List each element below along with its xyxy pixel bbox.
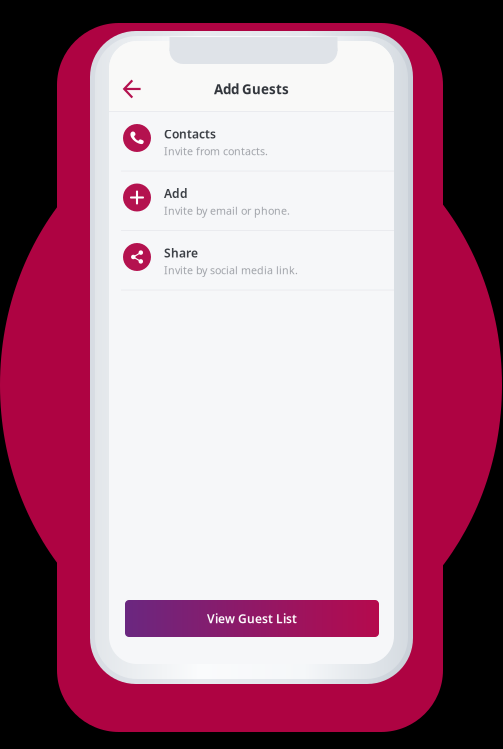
staticText: Share <box>164 245 198 261</box>
button[interactable]: View Guest List <box>109 600 394 637</box>
button[interactable]: Add <box>109 171 394 231</box>
staticText: Invite from contacts. <box>164 144 268 158</box>
staticText: Add <box>164 185 188 201</box>
staticText: Invite by social media link. <box>164 263 298 277</box>
staticText: View Guest List <box>207 610 297 626</box>
staticText: Invite by email or phone. <box>164 203 290 218</box>
button[interactable]: Contacts <box>109 112 394 171</box>
staticText: Contacts <box>164 126 216 142</box>
staticText: Add Guests <box>214 80 289 98</box>
button[interactable]: Share <box>109 231 394 290</box>
button[interactable]: Back <box>109 68 152 110</box>
